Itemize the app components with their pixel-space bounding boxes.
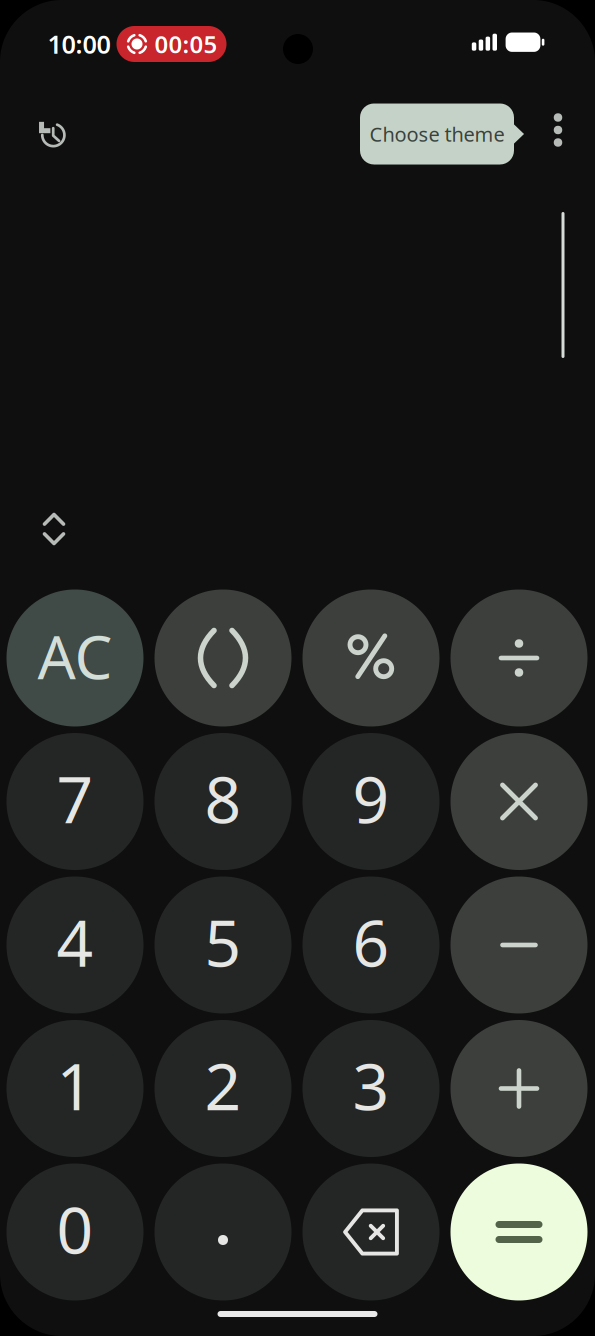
staticText: 10:00	[47, 27, 110, 61]
staticText: 0	[56, 1186, 93, 1271]
button[interactable]: 1	[6, 1020, 143, 1157]
staticText: Choose theme	[369, 121, 504, 147]
button[interactable]: Delete	[302, 1163, 439, 1300]
staticText: 00:05	[154, 28, 217, 60]
button[interactable]: 4	[6, 876, 143, 1013]
button[interactable]: 9	[302, 733, 439, 870]
button[interactable]: Parentheses	[154, 589, 291, 726]
button[interactable]: 6	[302, 876, 439, 1013]
button[interactable]: All clear	[6, 589, 143, 726]
button[interactable]: Decimal point	[154, 1163, 291, 1300]
button[interactable]: Expand history	[23, 498, 85, 560]
button[interactable]: 7	[6, 733, 143, 870]
staticText: 9	[352, 756, 389, 841]
button[interactable]: Choose theme	[354, 103, 520, 164]
staticText: 4	[56, 899, 93, 984]
button[interactable]: 8	[154, 733, 291, 870]
staticText: 6	[352, 899, 389, 984]
staticText: 2	[204, 1043, 241, 1128]
staticText: 3	[352, 1043, 389, 1128]
button[interactable]: More options	[532, 104, 584, 156]
staticText: 5	[204, 899, 241, 984]
staticText: 8	[204, 756, 241, 841]
button[interactable]: Equals	[450, 1163, 587, 1300]
button[interactable]: History	[24, 106, 80, 162]
staticText: 7	[56, 756, 93, 841]
button[interactable]: Add	[450, 1020, 587, 1157]
button[interactable]: Multiply	[450, 733, 587, 870]
button[interactable]: 3	[302, 1020, 439, 1157]
staticText: 1	[56, 1043, 93, 1128]
button[interactable]: Divide	[450, 589, 587, 726]
button[interactable]: Subtract	[450, 876, 587, 1013]
button[interactable]: 0	[6, 1163, 143, 1300]
button[interactable]: Percent	[302, 589, 439, 726]
button[interactable]: 2	[154, 1020, 291, 1157]
button[interactable]: 5	[154, 876, 291, 1013]
staticText: AC	[37, 616, 112, 696]
